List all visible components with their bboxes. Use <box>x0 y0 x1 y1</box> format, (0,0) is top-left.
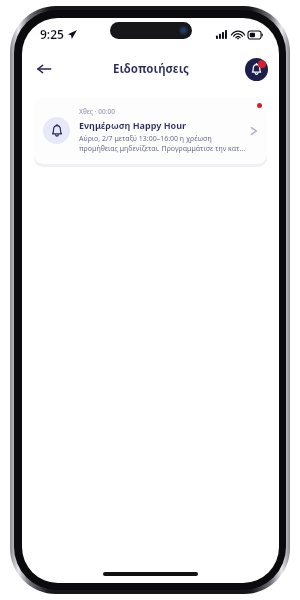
button[interactable]: Back <box>28 53 60 85</box>
button[interactable]: Χθες · 00:00 <box>34 97 267 164</box>
staticText: Χθες · 00:00 <box>79 107 115 116</box>
staticText: Ενημέρωση Happy Hour <box>79 119 187 131</box>
staticText: Αύριο, 2/7 μεταξύ 13:00–16:00 η χρέωση π… <box>79 134 246 154</box>
button[interactable]: Notifications <box>245 58 268 81</box>
staticText: Ειδοποιήσεις <box>113 61 189 77</box>
staticText: 9:25 <box>40 26 64 42</box>
